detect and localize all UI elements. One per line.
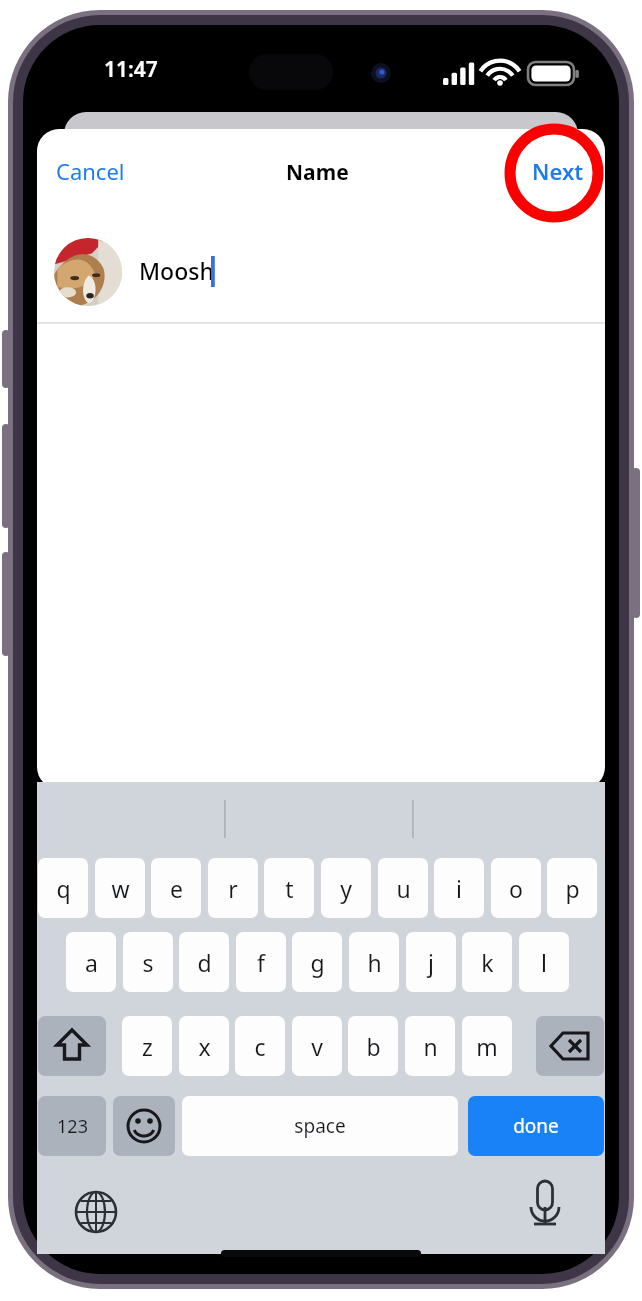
button[interactable]: done [468, 1096, 604, 1156]
button[interactable]: c [235, 1016, 285, 1076]
staticText: p [565, 873, 580, 904]
staticText: v [311, 1031, 323, 1062]
staticText: 11:47 [104, 55, 158, 84]
staticText: r [228, 873, 238, 904]
staticText: h [367, 947, 382, 978]
button[interactable]: e [151, 858, 201, 918]
button[interactable]: f [236, 932, 286, 992]
staticText: d [197, 947, 212, 978]
staticText: k [481, 947, 494, 978]
button[interactable]: Dictation [518, 1180, 570, 1232]
button[interactable]: z [122, 1016, 172, 1076]
staticText: 123 [57, 1114, 88, 1139]
button[interactable]: u [378, 858, 428, 918]
staticText: q [56, 873, 71, 904]
button[interactable]: Emoji [113, 1096, 175, 1156]
button[interactable]: t [264, 858, 314, 918]
button[interactable]: q [38, 858, 88, 918]
button[interactable]: i [434, 858, 484, 918]
button[interactable]: w [95, 858, 145, 918]
button[interactable]: space [182, 1096, 458, 1156]
staticText: z [142, 1031, 153, 1062]
staticText: c [254, 1031, 266, 1062]
staticText: g [310, 947, 325, 978]
staticText: Next [532, 156, 584, 186]
button[interactable]: a [66, 932, 116, 992]
button[interactable]: d [179, 932, 229, 992]
staticText: l [541, 947, 547, 978]
button[interactable]: m [462, 1016, 512, 1076]
staticText: space [294, 1113, 346, 1139]
staticText: Moosh [139, 255, 214, 286]
staticText: x [198, 1031, 211, 1062]
button[interactable]: Shift [38, 1016, 106, 1076]
staticText: n [423, 1031, 438, 1062]
staticText: j [428, 947, 434, 978]
staticText: m [476, 1031, 498, 1062]
staticText: e [170, 873, 183, 904]
staticText: done [513, 1113, 559, 1139]
button[interactable]: s [123, 932, 173, 992]
staticText: f [257, 947, 265, 978]
button[interactable]: v [292, 1016, 342, 1076]
button[interactable]: r [208, 858, 258, 918]
staticText: s [142, 947, 154, 978]
staticText: i [456, 873, 462, 904]
staticText: u [396, 873, 411, 904]
button[interactable]: j [406, 932, 456, 992]
button[interactable]: o [491, 858, 541, 918]
staticText: y [340, 873, 352, 904]
button[interactable]: p [547, 858, 597, 918]
button[interactable]: 123 [38, 1096, 106, 1156]
button[interactable]: Cancel [50, 152, 131, 190]
button[interactable]: l [519, 932, 569, 992]
button[interactable]: b [348, 1016, 398, 1076]
button[interactable]: Change keyboard [70, 1186, 122, 1238]
staticText: o [509, 873, 523, 904]
staticText: w [111, 873, 130, 904]
button[interactable]: g [292, 932, 342, 992]
button[interactable]: h [349, 932, 399, 992]
staticText: b [366, 1031, 381, 1062]
button[interactable]: Next [526, 152, 590, 190]
button[interactable]: x [179, 1016, 229, 1076]
staticText: a [85, 947, 98, 978]
staticText: Name [286, 158, 349, 187]
button[interactable]: n [405, 1016, 455, 1076]
staticText: t [285, 873, 294, 904]
button[interactable]: k [462, 932, 512, 992]
staticText: Cancel [56, 156, 125, 186]
button[interactable]: Backspace [536, 1016, 604, 1076]
button[interactable]: y [321, 858, 371, 918]
